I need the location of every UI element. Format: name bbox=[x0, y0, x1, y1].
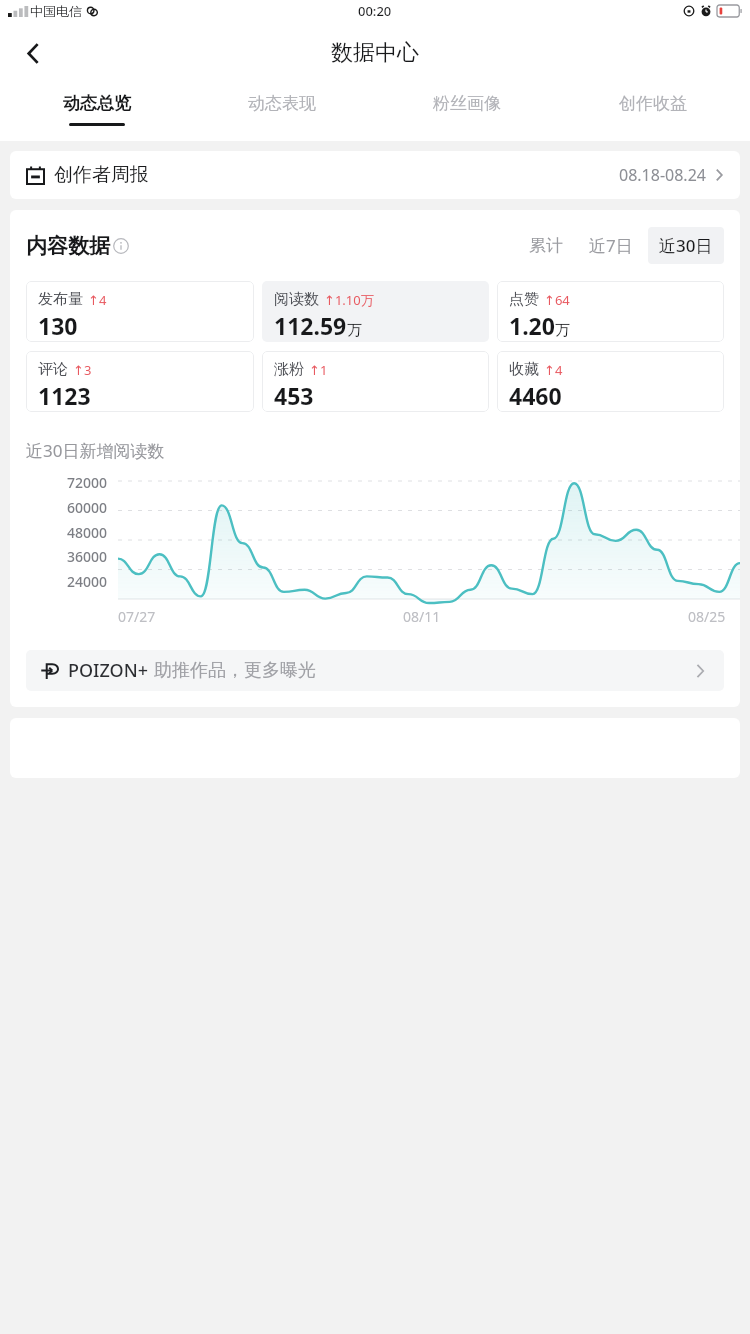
button[interactable]: 近30日 bbox=[648, 227, 724, 264]
staticText: 动态表现 bbox=[248, 93, 316, 114]
staticText: 粉丝画像 bbox=[433, 93, 501, 114]
button[interactable]: 累计 bbox=[518, 228, 574, 263]
staticText: 发布量 bbox=[38, 290, 83, 309]
staticText: 07/27 bbox=[118, 607, 156, 626]
staticText: 72000 bbox=[67, 473, 108, 492]
button[interactable]: Info bbox=[113, 238, 129, 254]
button[interactable]: 创作者周报 bbox=[10, 151, 740, 199]
staticText: 涨粉 bbox=[274, 360, 304, 379]
button[interactable]: 阅读数 bbox=[262, 281, 489, 342]
staticText: 点赞 bbox=[509, 290, 539, 309]
staticText: 收藏 bbox=[509, 360, 539, 379]
button[interactable]: 评论 bbox=[26, 351, 254, 412]
staticText: 453 bbox=[274, 380, 314, 411]
staticText: 130 bbox=[38, 310, 78, 341]
staticText: 36000 bbox=[67, 547, 108, 566]
staticText: 48000 bbox=[67, 523, 108, 542]
staticText: ↑4 bbox=[544, 361, 563, 379]
staticText: 累计 bbox=[529, 235, 563, 256]
staticText: ↑3 bbox=[73, 361, 92, 379]
staticText: 评论 bbox=[38, 360, 68, 379]
staticText: 08.18-08.24 bbox=[619, 164, 706, 186]
staticText: 00:20 bbox=[358, 2, 392, 20]
staticText: 08/25 bbox=[688, 607, 726, 626]
button[interactable]: 动态总览 bbox=[4, 84, 189, 141]
staticText: 08/11 bbox=[403, 607, 441, 626]
staticText: 动态总览 bbox=[63, 93, 131, 114]
staticText: 近7日 bbox=[589, 234, 633, 257]
staticText: 万 bbox=[555, 321, 570, 340]
staticText: 创作者周报 bbox=[54, 163, 149, 187]
staticText: 数据中心 bbox=[331, 39, 419, 67]
staticText: ↑1.10万 bbox=[324, 291, 374, 309]
staticText: POIZON+ bbox=[68, 658, 148, 683]
staticText: 创作收益 bbox=[619, 93, 687, 114]
staticText: 中国电信 bbox=[30, 3, 82, 19]
staticText: 4460 bbox=[509, 380, 562, 411]
button[interactable]: 点赞 bbox=[497, 281, 724, 342]
button[interactable]: 动态表现 bbox=[189, 84, 374, 141]
button[interactable]: POIZON+ bbox=[26, 650, 724, 691]
staticText: 1.20 bbox=[509, 310, 555, 341]
button[interactable]: 创作收益 bbox=[560, 84, 746, 141]
staticText: 1123 bbox=[38, 380, 91, 411]
button[interactable]: 近7日 bbox=[578, 227, 644, 264]
button[interactable]: 粉丝画像 bbox=[374, 84, 560, 141]
button[interactable]: 收藏 bbox=[497, 351, 724, 412]
staticText: 24000 bbox=[67, 572, 108, 591]
staticText: 近30日新增阅读数 bbox=[26, 439, 165, 462]
button[interactable]: Back bbox=[9, 29, 57, 77]
staticText: 万 bbox=[347, 321, 362, 340]
staticText: 阅读数 bbox=[274, 290, 319, 309]
staticText: 近30日 bbox=[659, 234, 713, 257]
staticText: ↑1 bbox=[309, 361, 328, 379]
button[interactable]: 涨粉 bbox=[262, 351, 489, 412]
staticText: 112.59 bbox=[274, 310, 347, 341]
button[interactable]: 发布量 bbox=[26, 281, 254, 342]
staticText: 60000 bbox=[67, 498, 108, 517]
staticText: 助推作品，更多曝光 bbox=[154, 659, 316, 682]
staticText: ↑64 bbox=[544, 291, 570, 309]
staticText: 内容数据 bbox=[26, 233, 110, 259]
staticText: ↑4 bbox=[88, 291, 107, 309]
